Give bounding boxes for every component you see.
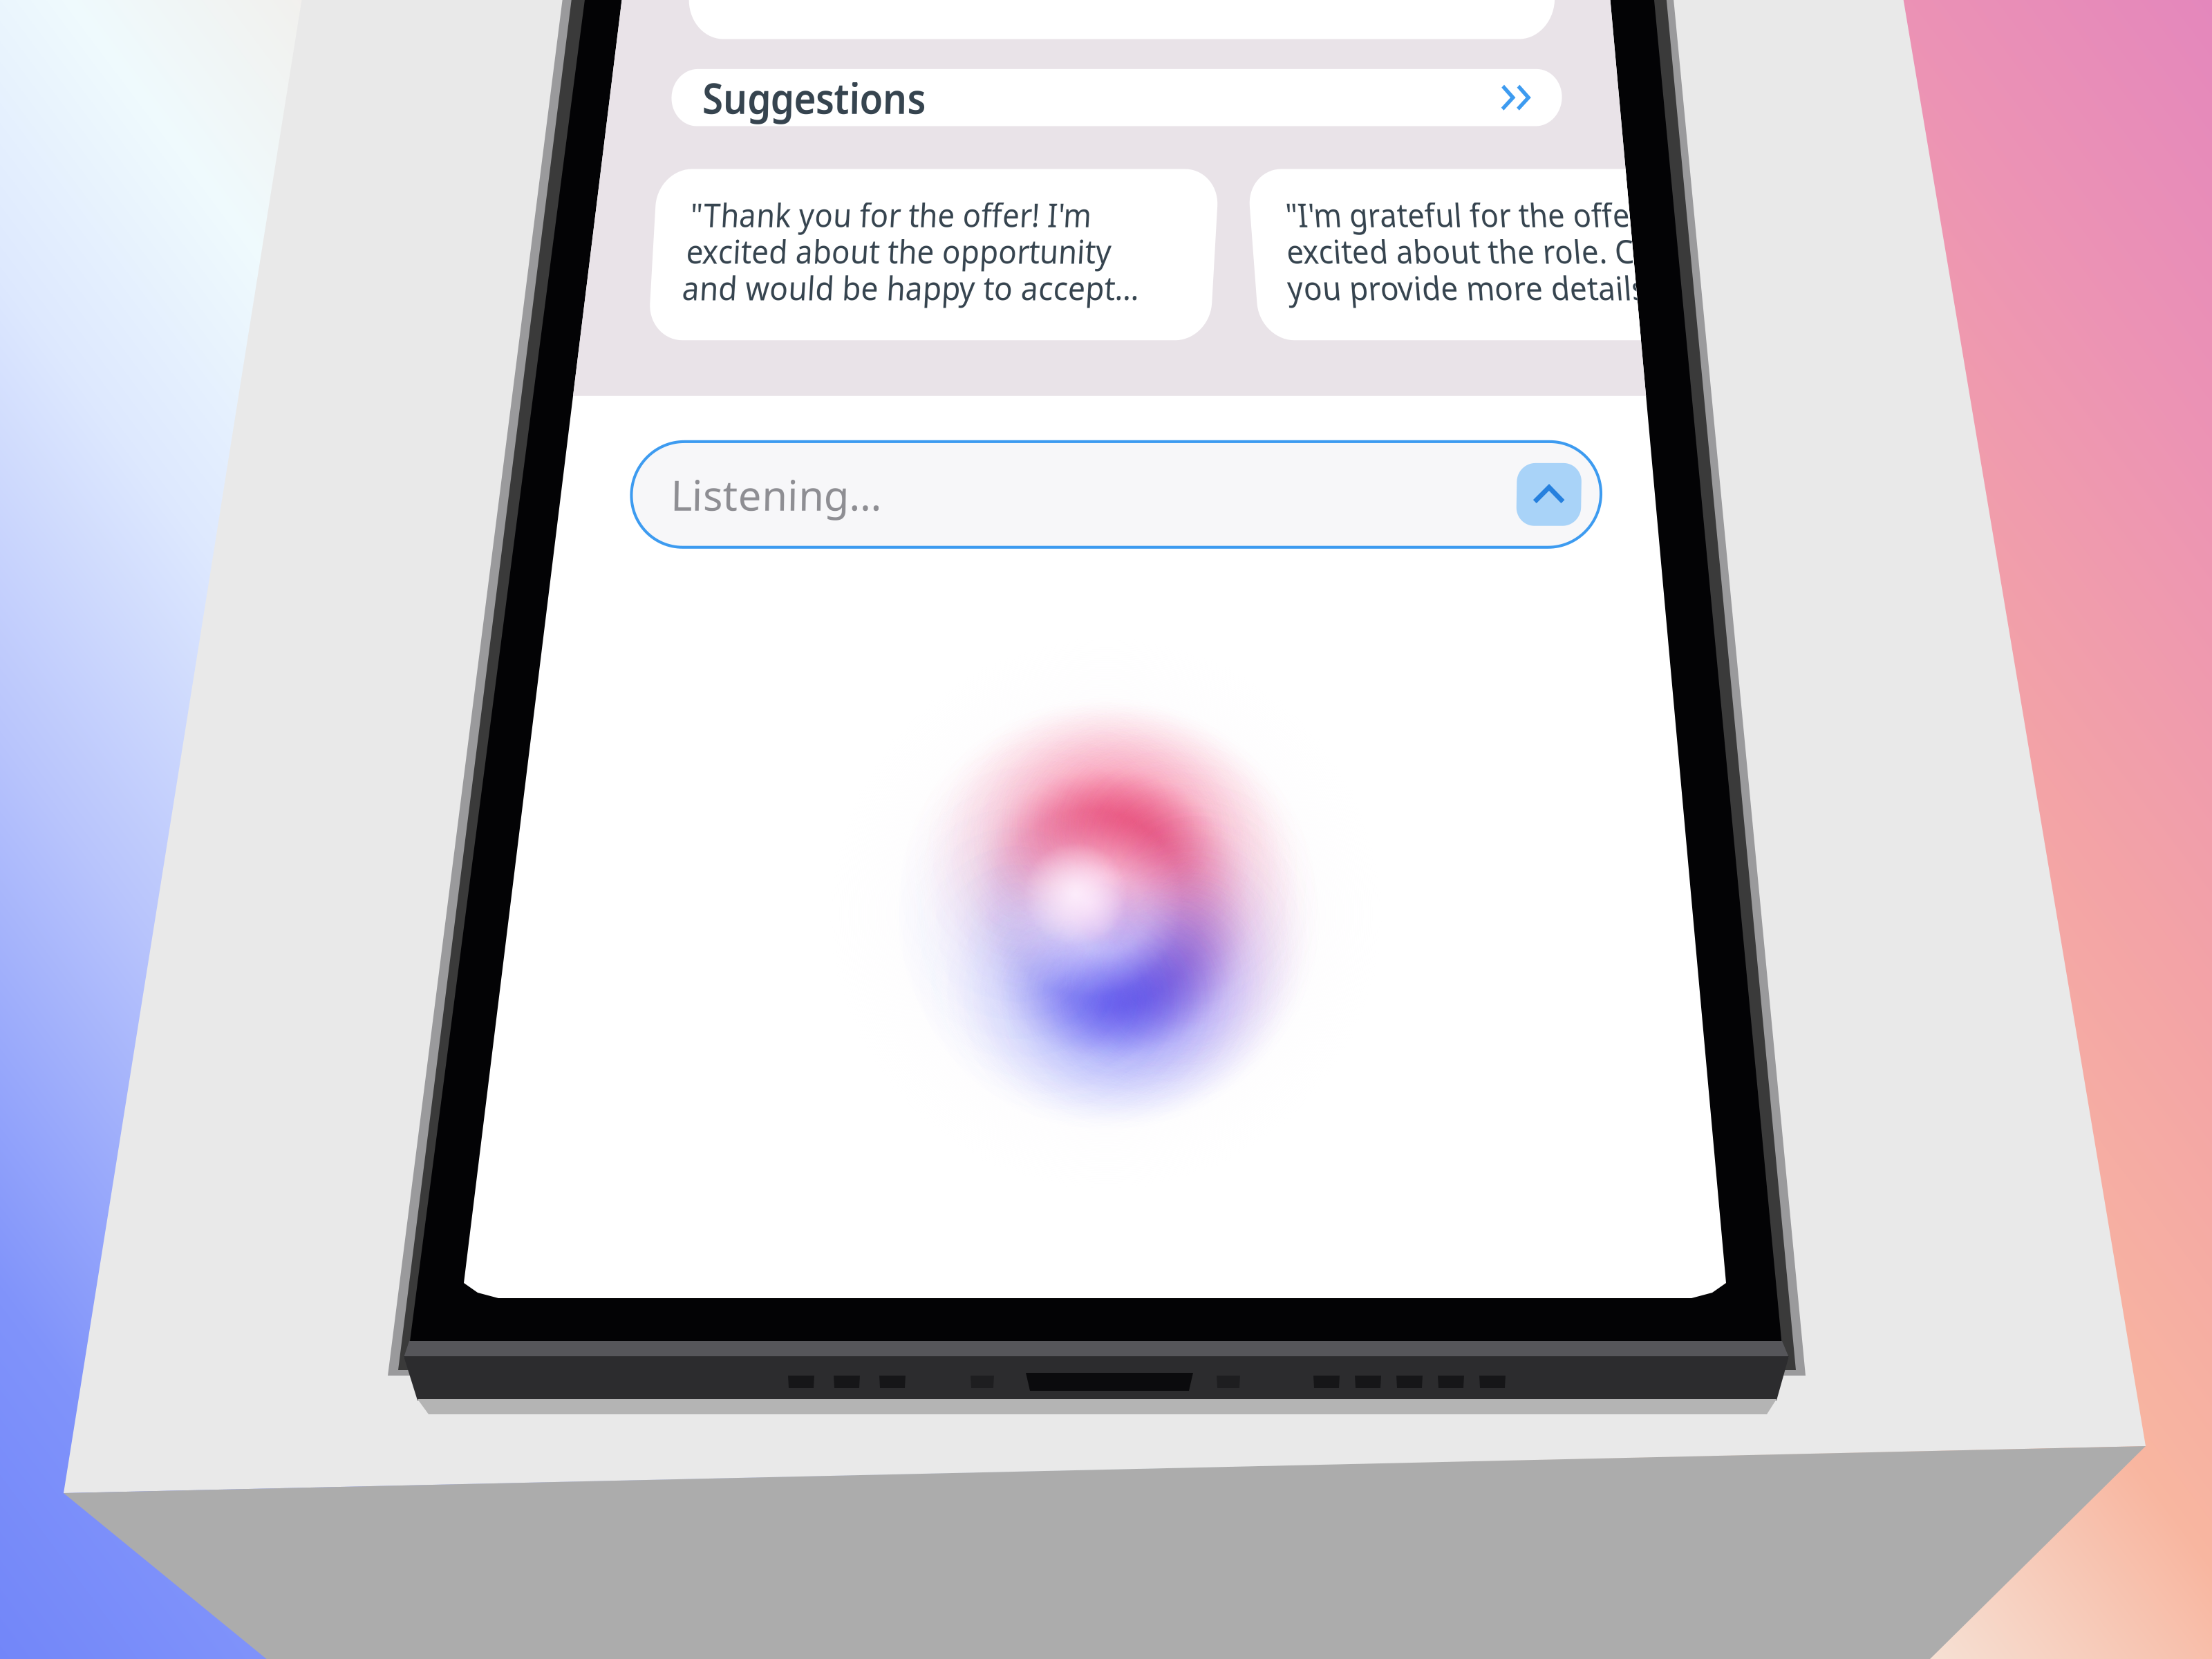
staticText: "I'm grateful for the offer and: [0, 0, 218, 21]
staticText: excited about the opportunity: [0, 0, 221, 21]
button[interactable]: Listening…: [0, 0, 477, 51]
staticText: excited about the role. Could: [0, 0, 213, 21]
button[interactable]: Suggestions: [0, 0, 478, 28]
staticText: and would be happy to accept…: [0, 0, 235, 21]
button[interactable]: [0, 0, 291, 83]
button[interactable]: [0, 0, 291, 83]
